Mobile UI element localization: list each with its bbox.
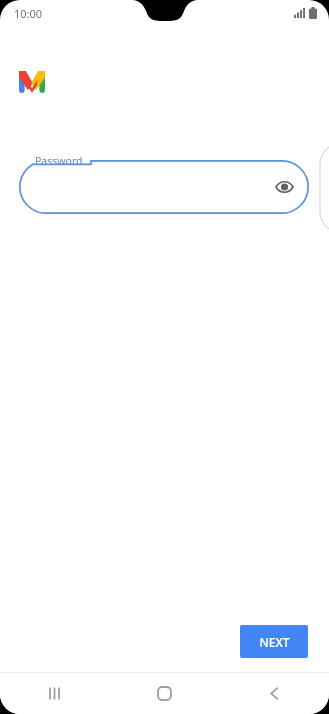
button[interactable]: Home	[109, 673, 219, 714]
staticText: NEXT	[259, 634, 290, 650]
button[interactable]: NEXT	[240, 625, 308, 658]
button[interactable]: Back	[219, 673, 329, 714]
button[interactable]: Recent apps	[0, 673, 109, 714]
button[interactable]: Password	[19, 160, 309, 214]
staticText: 10:00	[14, 6, 43, 21]
button[interactable]: Show password	[271, 174, 297, 200]
staticText: Password	[35, 154, 83, 168]
